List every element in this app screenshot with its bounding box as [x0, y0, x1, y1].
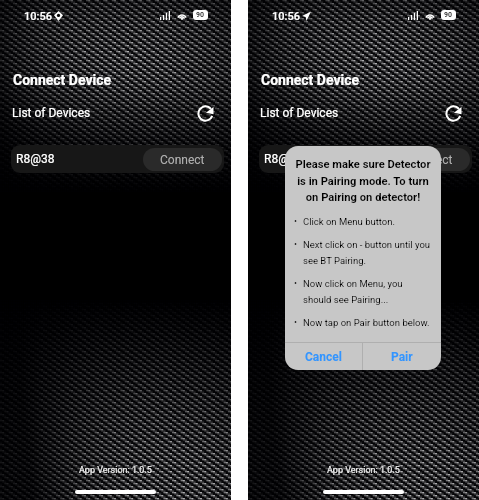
staticText: 90 — [196, 11, 205, 19]
staticText: App Version: 1.0.5 — [79, 465, 152, 476]
staticText: 10:56 — [24, 10, 52, 23]
button[interactable]: Connect — [391, 148, 470, 171]
button[interactable]: R8@38 — [259, 145, 472, 173]
button[interactable]: Connect — [143, 148, 222, 171]
button[interactable]: Cancel — [285, 343, 362, 370]
staticText: R8@38 — [264, 152, 303, 166]
staticText: Pair — [391, 350, 413, 364]
staticText: 90 — [444, 11, 453, 19]
staticText: Connect Device — [13, 72, 112, 88]
staticText: Connect Device — [261, 72, 360, 88]
staticText: Connect — [160, 153, 205, 167]
staticText: Please make sure Detector is in Pairing … — [292, 158, 434, 203]
staticText: Cancel — [305, 350, 342, 364]
staticText: R8@38 — [16, 152, 55, 166]
staticText: • — [294, 216, 298, 227]
staticText: Next click on - button until you see BT … — [303, 239, 432, 266]
staticText: • — [294, 317, 298, 328]
staticText: List of Devices — [260, 106, 339, 120]
staticText: App Version: 1.0.5 — [327, 465, 400, 476]
button[interactable]: Pair — [363, 343, 441, 370]
button[interactable]: Refresh list of devices — [444, 104, 463, 123]
staticText: • — [294, 278, 298, 289]
button[interactable]: Refresh list of devices — [196, 104, 215, 123]
staticText: Click on Menu button. — [303, 216, 396, 227]
staticText: 10:56 — [272, 10, 300, 23]
button[interactable]: R8@38 — [11, 145, 224, 173]
staticText: Connect — [408, 153, 453, 167]
staticText: • — [294, 239, 298, 250]
staticText: List of Devices — [12, 106, 91, 120]
staticText: Now tap on Pair button below. — [303, 317, 430, 328]
staticText: Now click on Menu, you should see Pairin… — [303, 278, 432, 305]
